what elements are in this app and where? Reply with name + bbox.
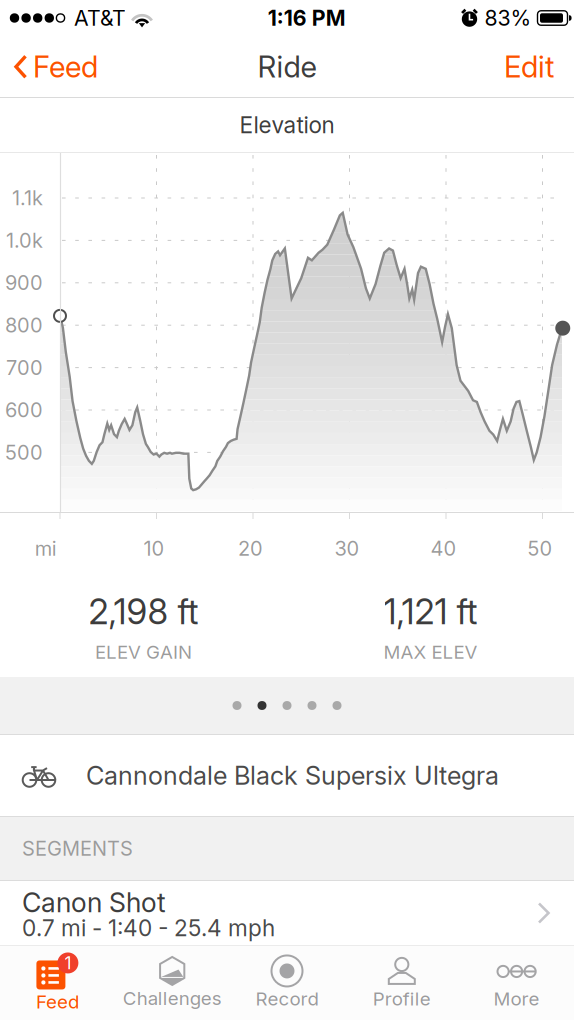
staticText: 900	[5, 271, 43, 295]
staticText: Feed	[33, 49, 98, 84]
staticText: 1:16 PM	[268, 5, 346, 31]
button[interactable]: More	[459, 945, 574, 1020]
staticText: 700	[6, 355, 43, 380]
staticText: 1.1k	[12, 186, 43, 210]
button[interactable]: Challenges	[115, 945, 230, 1020]
staticText: Record	[255, 987, 318, 1010]
staticText: AT&T	[68, 5, 126, 31]
staticText: SEGMENTS	[22, 836, 133, 861]
staticText: Feed	[36, 990, 79, 1013]
staticText: Elevation	[239, 111, 334, 139]
staticText: Edit	[504, 49, 554, 84]
staticText: More	[494, 987, 540, 1010]
staticText: 2,198 ft	[88, 591, 198, 633]
staticText: Challenges	[123, 987, 222, 1010]
staticText: 20	[238, 536, 263, 561]
staticText: 1,121 ft	[383, 591, 477, 633]
staticText: MAX ELEV	[383, 641, 477, 663]
staticText: 1.0k	[6, 228, 43, 252]
staticText: 1	[64, 952, 71, 973]
staticText: 30	[334, 536, 359, 561]
staticText: Ride	[257, 49, 316, 84]
staticText: 10	[143, 536, 164, 561]
staticText: ELEV GAIN	[95, 641, 192, 663]
staticText: Canon Shot	[22, 886, 166, 919]
staticText: 800	[5, 313, 43, 337]
button[interactable]: Canon Shot	[0, 881, 574, 945]
button[interactable]: Feed	[0, 36, 110, 97]
staticText: 600	[5, 398, 43, 422]
staticText: mi	[35, 536, 57, 561]
button[interactable]: Record	[230, 945, 344, 1020]
button[interactable]: Edit	[490, 36, 574, 97]
staticText: 0.7 mi - 1:40 - 25.4 mph	[22, 914, 275, 942]
button[interactable]: Cannondale Black Supersix Ultegra	[0, 735, 574, 816]
staticText: 83%	[478, 5, 537, 31]
staticText: 50	[527, 536, 552, 561]
button[interactable]: Profile	[344, 945, 459, 1020]
staticText: Profile	[373, 987, 431, 1010]
staticText: 40	[430, 536, 456, 561]
staticText: 500	[5, 440, 43, 464]
button[interactable]: 1	[0, 945, 115, 1020]
staticText: Cannondale Black Supersix Ultegra	[86, 760, 499, 791]
